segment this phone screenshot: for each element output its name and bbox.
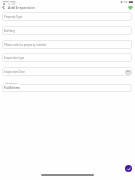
staticText: Building: [4, 29, 15, 33]
staticText: Please select a property number: [4, 43, 47, 47]
staticText: Property Type: [4, 15, 23, 19]
button[interactable]: Please select a property number: [2, 40, 132, 49]
button[interactable]: Property Type: [2, 12, 132, 21]
staticText: Inspection Date: [4, 70, 25, 74]
button[interactable]: Save: [125, 165, 132, 172]
button[interactable]: Inspection type: [2, 53, 132, 62]
staticText: Flat/Scheme: [4, 86, 20, 90]
button[interactable]: Building: [2, 26, 132, 35]
staticText: Components: [5, 82, 18, 85]
button[interactable]: App logo: [128, 5, 133, 10]
staticText: Inspection type: [4, 56, 25, 60]
staticText: Add Inspection: [8, 5, 35, 10]
button[interactable]: Flat/Scheme: [2, 84, 132, 92]
button[interactable]: Inspection Date: [2, 67, 132, 76]
button[interactable]: Back: [0, 4, 7, 11]
